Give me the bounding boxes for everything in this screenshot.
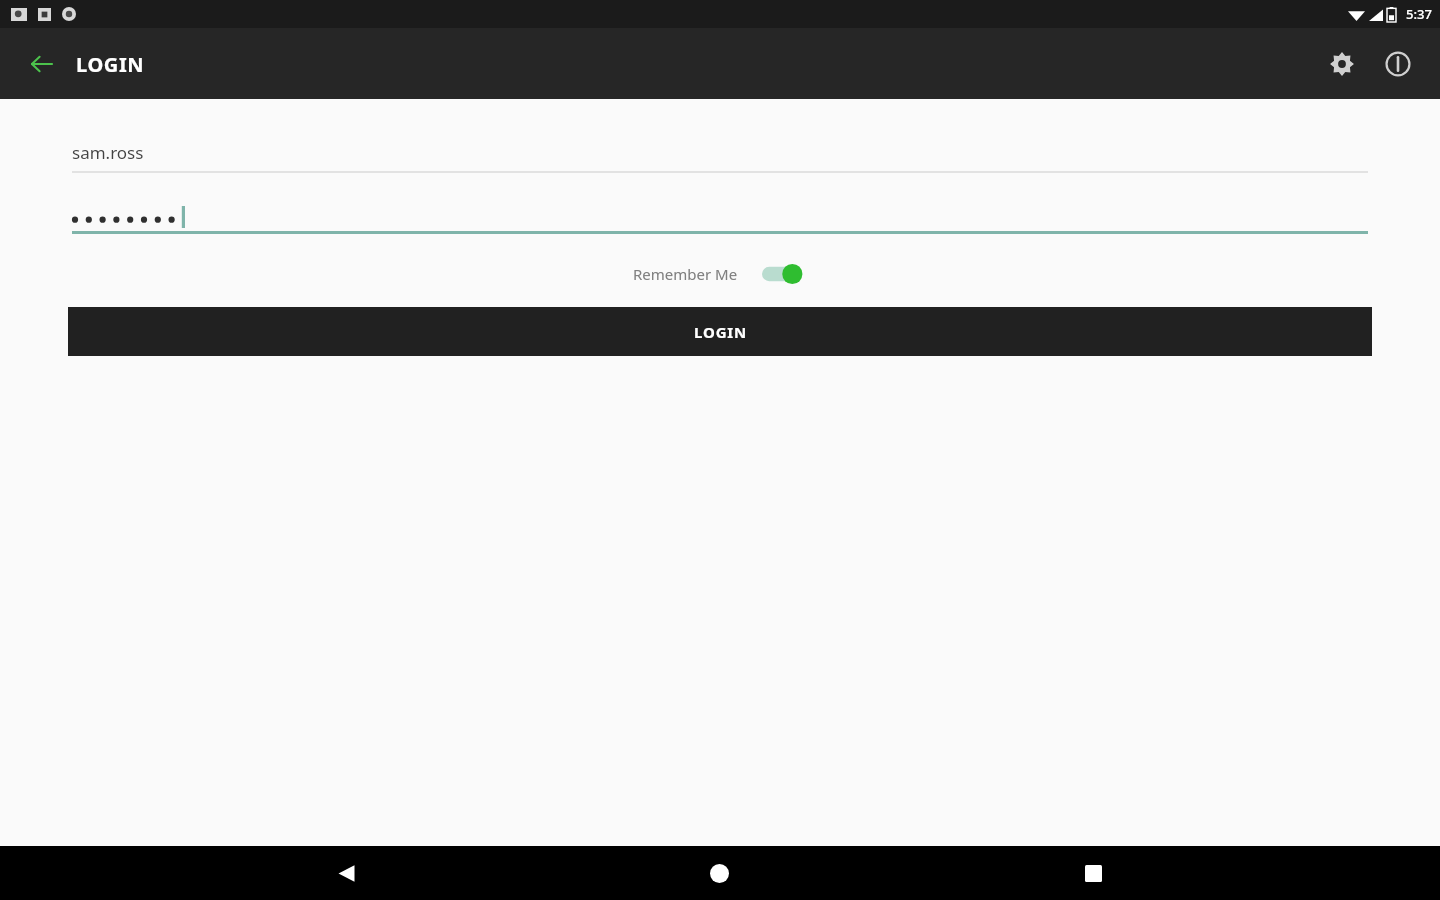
staticText: sam.ross — [72, 141, 144, 164]
button[interactable] — [72, 206, 1368, 234]
button[interactable]: Settings — [1318, 40, 1366, 88]
button[interactable]: Back — [18, 40, 66, 88]
button[interactable]: Remember Me — [629, 256, 812, 292]
button[interactable]: Info — [1374, 40, 1422, 88]
staticText: Remember Me — [633, 264, 738, 284]
staticText: LOGIN — [694, 322, 747, 342]
button[interactable]: LOGIN — [68, 307, 1372, 356]
button[interactable]: Back — [319, 846, 373, 900]
button[interactable]: Home — [692, 846, 746, 900]
button[interactable]: Recent apps — [1066, 846, 1120, 900]
button[interactable]: sam.ross — [72, 141, 1368, 173]
staticText: 5:37 — [1406, 5, 1432, 23]
staticText: LOGIN — [76, 51, 145, 78]
